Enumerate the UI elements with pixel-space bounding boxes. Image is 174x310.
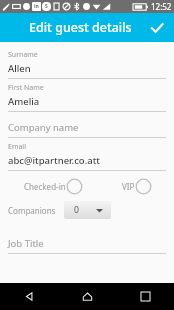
- staticText: Allen: [8, 62, 31, 75]
- button[interactable]: Back: [0, 283, 58, 310]
- staticText: First Name: [8, 83, 44, 93]
- button[interactable]: Home: [58, 283, 116, 310]
- button[interactable]: VIP: [122, 178, 152, 195]
- button[interactable]: Checked-in: [24, 178, 83, 195]
- staticText: abc@itpartner.co.att: [8, 154, 100, 167]
- staticText: Edit guest details: [29, 19, 132, 36]
- button[interactable]: Company name: [0, 112, 174, 138]
- staticText: VIP: [122, 181, 135, 192]
- button[interactable]: First Name: [0, 79, 174, 112]
- button[interactable]: Save guest details: [145, 16, 169, 40]
- staticText: Email: [8, 142, 26, 152]
- button[interactable]: Companions count: [64, 201, 111, 219]
- button[interactable]: Surname: [0, 46, 174, 79]
- staticText: Companions: [8, 205, 56, 216]
- button[interactable]: Email: [0, 138, 174, 171]
- staticText: Checked-in: [24, 181, 66, 192]
- staticText: Surname: [8, 50, 38, 60]
- staticText: S: [45, 3, 48, 10]
- staticText: Amelia: [8, 95, 40, 108]
- button[interactable]: Job Title: [0, 228, 174, 254]
- staticText: 12:52: [151, 1, 172, 12]
- button[interactable]: Recent apps: [116, 283, 174, 310]
- staticText: 0: [74, 204, 79, 216]
- staticText: Job Title: [8, 237, 44, 250]
- staticText: in: [34, 3, 39, 10]
- staticText: Company name: [8, 121, 79, 134]
